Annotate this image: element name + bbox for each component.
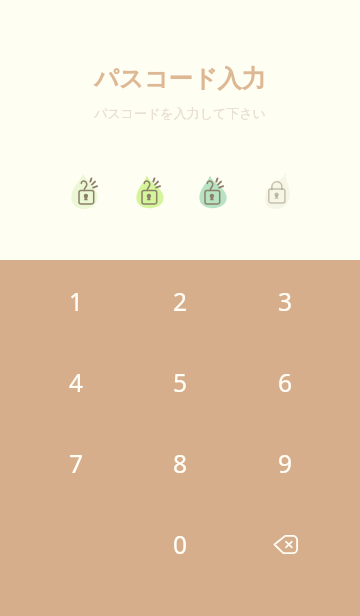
- other: Backspace: [273, 535, 298, 554]
- button[interactable]: 5: [140, 342, 220, 423]
- staticText: 6: [278, 366, 293, 399]
- staticText: パスコード入力: [94, 64, 266, 94]
- staticText: 1: [69, 285, 84, 318]
- staticText: 8: [173, 447, 188, 480]
- staticText: 5: [173, 366, 188, 399]
- staticText: 7: [69, 447, 84, 480]
- staticText: 0: [173, 528, 188, 561]
- button[interactable]: 9: [245, 423, 325, 504]
- button[interactable]: 4: [36, 342, 116, 423]
- button[interactable]: 7: [36, 423, 116, 504]
- staticText: 4: [69, 366, 84, 399]
- button[interactable]: 0: [140, 504, 220, 585]
- button[interactable]: 2: [140, 261, 220, 342]
- button[interactable]: Backspace: [245, 504, 325, 585]
- button[interactable]: 1: [36, 261, 116, 342]
- staticText: 9: [278, 447, 293, 480]
- staticText: 3: [278, 285, 293, 318]
- button[interactable]: 3: [245, 261, 325, 342]
- staticText: パスコードを入力して下さい: [94, 105, 266, 121]
- staticText: 2: [173, 285, 188, 318]
- button[interactable]: 8: [140, 423, 220, 504]
- button[interactable]: 6: [245, 342, 325, 423]
